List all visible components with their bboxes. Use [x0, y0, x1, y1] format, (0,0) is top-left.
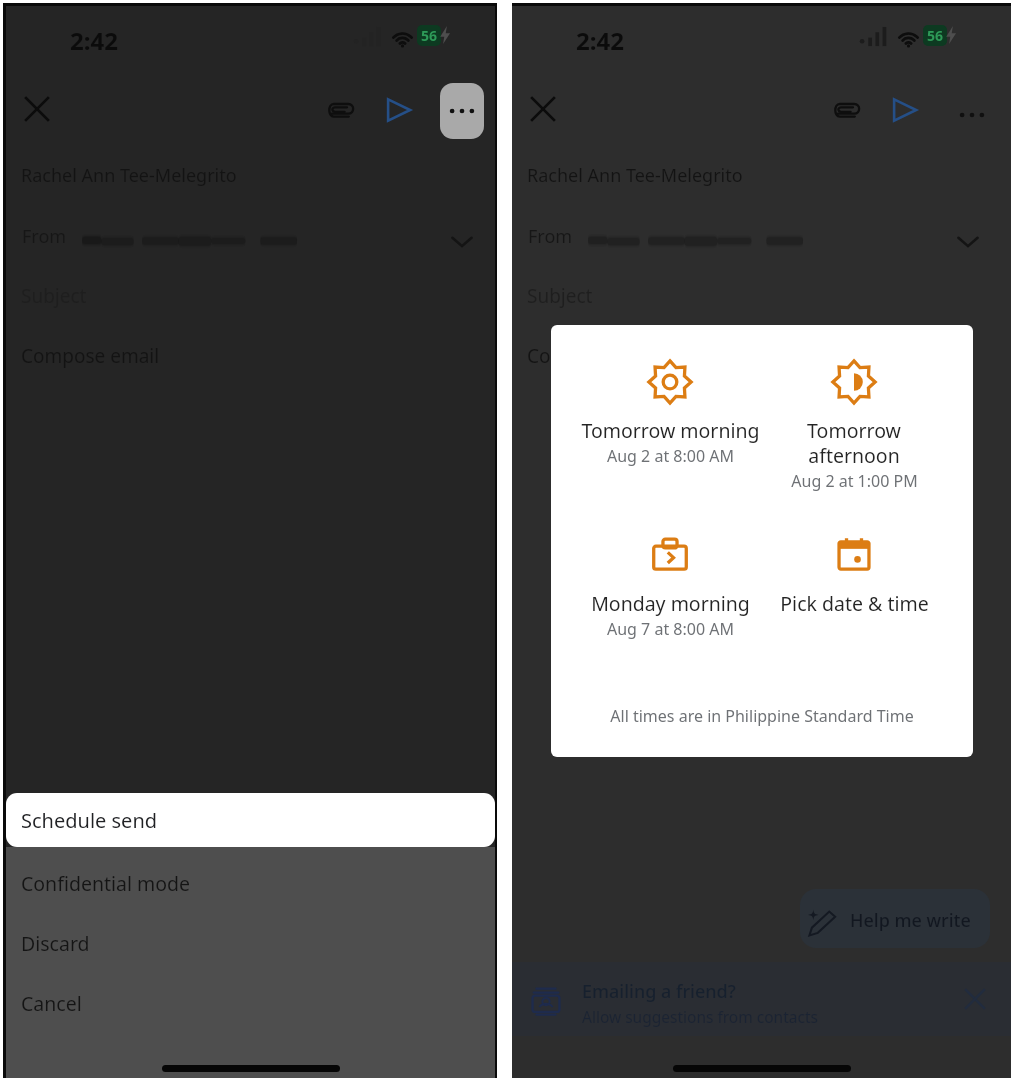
button[interactable]: Attach file	[326, 95, 356, 125]
button[interactable]: Tomorrow morning	[578, 360, 762, 467]
staticText: 56	[927, 26, 944, 45]
button[interactable]: Monday morning	[578, 533, 762, 640]
button[interactable]: Cancel	[6, 973, 495, 1033]
button[interactable]: Confidential mode	[6, 853, 495, 913]
staticText: From	[22, 224, 67, 249]
button[interactable]: More options	[440, 83, 484, 139]
button[interactable]: Dismiss	[960, 984, 990, 1014]
button[interactable]: Tomorrow afternoon	[762, 360, 946, 492]
staticText: Schedule send	[21, 807, 158, 834]
staticText: Allow suggestions from contacts	[582, 1006, 818, 1027]
staticText: Tomorrow afternoon	[762, 417, 946, 469]
staticText: 56	[421, 26, 438, 45]
button[interactable]: More options	[953, 96, 991, 134]
staticText: Discard	[21, 930, 90, 957]
staticText: 2:42	[576, 24, 624, 57]
staticText: Cancel	[21, 990, 82, 1017]
staticText: Pick date & time	[780, 590, 929, 617]
staticText: Tomorrow morning	[581, 417, 760, 444]
button[interactable]: Help me write	[800, 889, 990, 948]
button[interactable]: Schedule send	[6, 793, 495, 847]
staticText: From	[528, 224, 573, 249]
staticText: Monday morning	[591, 590, 750, 617]
staticText: Rachel Ann Tee-Melegrito	[21, 163, 237, 188]
staticText: Aug 7 at 8:00 AM	[607, 618, 734, 640]
staticText: Compose email	[21, 343, 160, 369]
staticText: Help me write	[850, 908, 971, 933]
staticText: Rachel Ann Tee-Melegrito	[527, 163, 743, 188]
button[interactable]: Send	[379, 91, 417, 129]
button[interactable]: Send	[885, 91, 923, 129]
button[interactable]: Attach file	[832, 95, 862, 125]
staticText: Confidential mode	[21, 870, 191, 897]
button[interactable]: Discard	[6, 913, 495, 973]
button[interactable]: Pick date & time	[762, 533, 946, 617]
staticText: 2:42	[70, 24, 118, 57]
staticText: Emailing a friend?	[582, 979, 736, 1004]
button[interactable]: Close	[525, 91, 561, 127]
button[interactable]: Close	[19, 91, 55, 127]
staticText: Aug 2 at 8:00 AM	[607, 445, 734, 467]
staticText: Aug 2 at 1:00 PM	[791, 470, 918, 492]
staticText: Compose email	[527, 343, 666, 369]
staticText: Subject	[527, 283, 593, 309]
staticText: All times are in Philippine Standard Tim…	[551, 705, 973, 727]
